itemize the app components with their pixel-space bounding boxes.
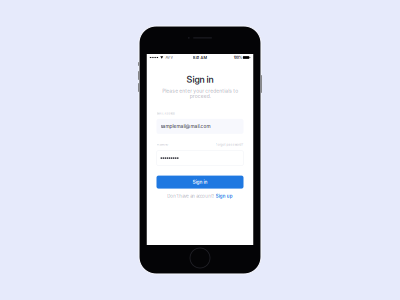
button[interactable]: samplemail@mail.com xyxy=(156,119,243,134)
staticText: samplemail@mail.com xyxy=(160,124,210,129)
staticText: Please enter your credentials to proceed… xyxy=(162,88,238,99)
staticText: 100% xyxy=(234,55,242,60)
button[interactable]: Sign in xyxy=(156,176,243,189)
staticText: Sign in xyxy=(192,179,207,185)
staticText: 9:41 AM xyxy=(192,55,207,60)
staticText: Forgot password? xyxy=(215,143,243,147)
staticText: Sign in xyxy=(186,74,213,85)
button[interactable]: Sign up xyxy=(216,194,233,199)
button[interactable] xyxy=(156,151,243,166)
staticText: Don't have an account? xyxy=(167,194,214,199)
staticText: Sign up xyxy=(216,194,233,199)
button[interactable]: Forgot password? xyxy=(215,143,243,147)
staticText: PASSWORD xyxy=(156,143,168,146)
staticText: AVV xyxy=(165,55,172,60)
staticText: EMAIL ADDRESS xyxy=(156,112,174,115)
